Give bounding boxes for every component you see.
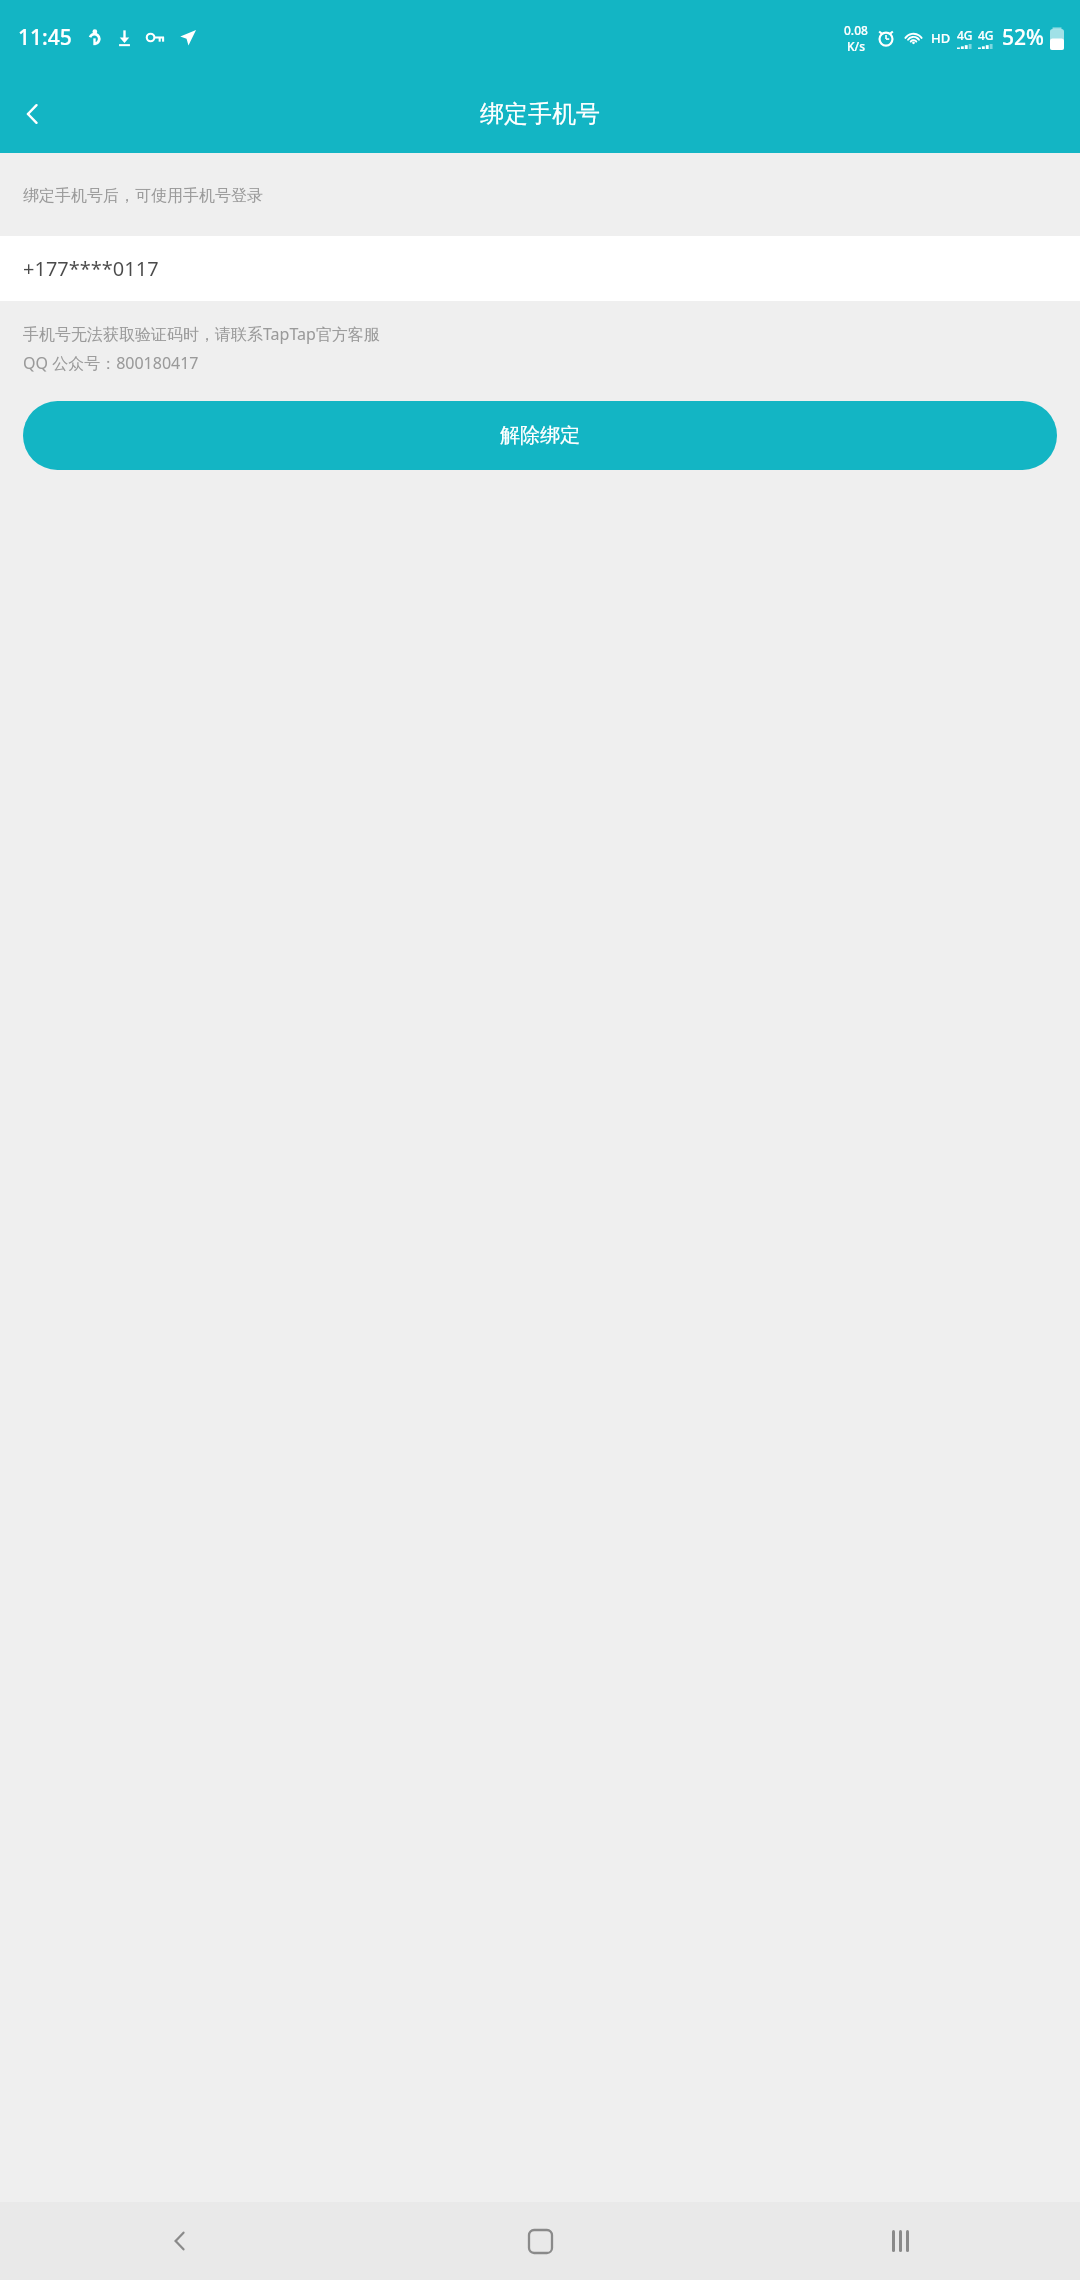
staticText: K/s: [847, 38, 866, 54]
button[interactable]: Back: [0, 2202, 360, 2280]
staticText: 绑定手机号后，可使用手机号登录: [23, 186, 263, 206]
staticText: 52%: [1002, 23, 1044, 52]
staticText: 4G: [957, 27, 973, 43]
staticText: 4G: [978, 27, 994, 43]
button[interactable]: 解除绑定: [23, 401, 1057, 470]
button[interactable]: Back: [0, 81, 66, 147]
staticText: 手机号无法获取验证码时，请联系TapTap官方客服: [23, 323, 380, 345]
staticText: +177****0117: [23, 255, 159, 282]
staticText: 解除绑定: [500, 423, 580, 448]
staticText: 绑定手机号: [480, 99, 600, 129]
staticText: HD: [931, 29, 951, 47]
button[interactable]: +177****0117: [0, 236, 1080, 301]
button[interactable]: Home: [360, 2202, 720, 2280]
staticText: 0.08: [844, 22, 868, 38]
button[interactable]: Recents: [720, 2202, 1080, 2280]
staticText: QQ 公众号：800180417: [23, 352, 199, 374]
staticText: 11:45: [18, 23, 72, 52]
